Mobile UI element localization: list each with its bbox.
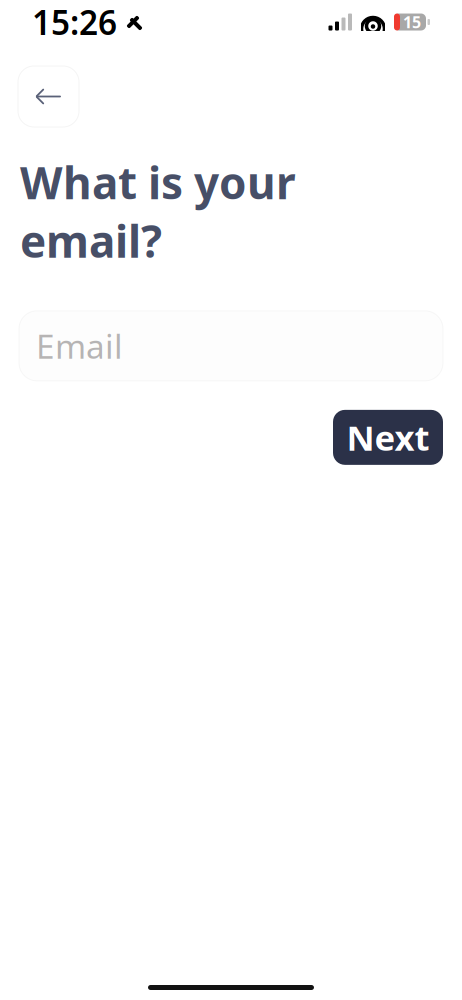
button[interactable]: Next xyxy=(333,410,443,465)
staticText: Next xyxy=(346,414,429,460)
staticText: 15 xyxy=(403,11,421,33)
staticText: What is your email? xyxy=(20,153,296,270)
button[interactable]: Email xyxy=(19,311,443,381)
staticText: Email xyxy=(36,324,123,368)
button[interactable]: Back xyxy=(18,66,79,127)
staticText: 15:26 xyxy=(32,0,117,44)
